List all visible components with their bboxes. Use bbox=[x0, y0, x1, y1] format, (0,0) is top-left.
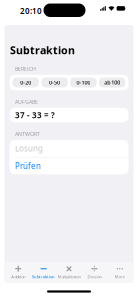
staticText: Subtraktion bbox=[32, 274, 55, 279]
button[interactable]: Subtraktion bbox=[31, 266, 56, 279]
button[interactable]: Multiplikation bbox=[56, 266, 82, 279]
button[interactable]: More bbox=[107, 266, 132, 279]
staticText: ab 100 bbox=[104, 79, 120, 86]
button[interactable]: 0-50 bbox=[41, 77, 68, 87]
staticText: Multiplikation bbox=[57, 274, 80, 279]
button[interactable]: ab 100 bbox=[99, 77, 125, 87]
staticText: 20:10 bbox=[20, 5, 42, 16]
staticText: More bbox=[115, 274, 125, 279]
staticText: ANTWORT bbox=[15, 130, 40, 137]
staticText: BEREICH bbox=[15, 65, 36, 72]
staticText: AUFGABE bbox=[15, 98, 38, 105]
staticText: Division bbox=[87, 274, 101, 279]
staticText: 37 - 33 = ? bbox=[15, 110, 55, 120]
staticText: 0-50 bbox=[49, 79, 60, 86]
staticText: 0-100 bbox=[76, 79, 90, 86]
button[interactable]: 0-20 bbox=[12, 77, 39, 87]
button[interactable]: 0-100 bbox=[70, 77, 97, 87]
staticText: Addition bbox=[11, 274, 25, 279]
staticText: Lösung bbox=[15, 143, 43, 154]
staticText: Prüfen bbox=[15, 160, 41, 171]
button[interactable]: Addition bbox=[5, 266, 31, 279]
button[interactable]: Division bbox=[82, 266, 107, 279]
button[interactable]: Prüfen bbox=[9, 157, 128, 174]
staticText: Subtraktion bbox=[10, 43, 75, 57]
staticText: 0-20 bbox=[20, 79, 31, 86]
